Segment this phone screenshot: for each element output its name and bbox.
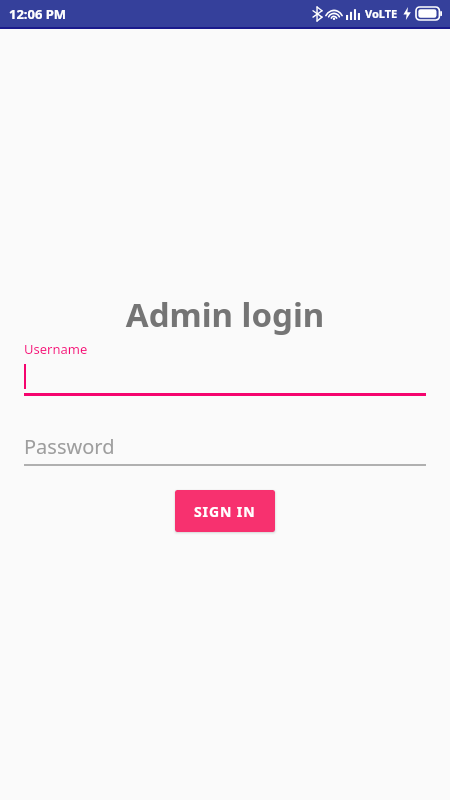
staticText: 12:06 PM [9, 5, 67, 23]
button[interactable]: Password input field [0, 432, 450, 466]
staticText: Password [24, 433, 115, 460]
staticText: Username [24, 340, 88, 358]
button[interactable]: SIGN IN [175, 490, 275, 532]
staticText: VoLTE [365, 6, 398, 21]
staticText: Admin login [0, 292, 450, 337]
button[interactable]: Username input field [0, 360, 450, 396]
staticText: SIGN IN [194, 502, 256, 521]
